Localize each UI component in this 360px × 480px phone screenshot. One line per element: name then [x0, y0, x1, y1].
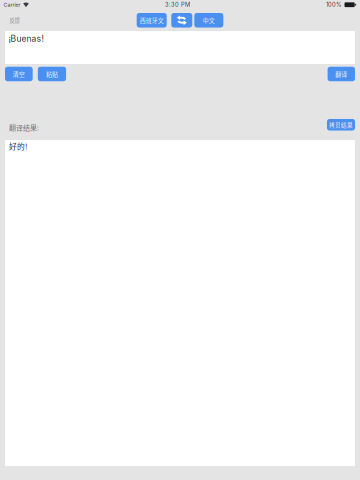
button[interactable]: 反馈 [5, 13, 23, 27]
staticText: 翻译结果: [9, 122, 39, 132]
button[interactable]: 清空 [5, 67, 33, 81]
button[interactable]: 拷贝结果 [327, 119, 355, 130]
button[interactable]: 中文 [194, 13, 223, 27]
staticText: 翻译 [335, 70, 347, 78]
staticText: ¡Buenas! [8, 33, 43, 44]
staticText: 3:30 PM [165, 1, 190, 8]
staticText: Carrier [3, 1, 20, 8]
staticText: 清空 [13, 70, 25, 78]
staticText: 100% [326, 1, 342, 8]
staticText: 反馈 [9, 16, 19, 24]
button[interactable]: 翻译 [328, 67, 355, 81]
staticText: 好的! [9, 140, 27, 152]
button[interactable]: 粘贴 [38, 67, 66, 81]
staticText: 西班牙文 [140, 16, 164, 25]
staticText: 拷贝结果 [329, 121, 353, 129]
button[interactable]: Swap languages [171, 13, 192, 27]
staticText: 中文 [203, 16, 215, 25]
staticText: 粘贴 [46, 70, 58, 78]
button[interactable]: 西班牙文 [137, 13, 167, 27]
